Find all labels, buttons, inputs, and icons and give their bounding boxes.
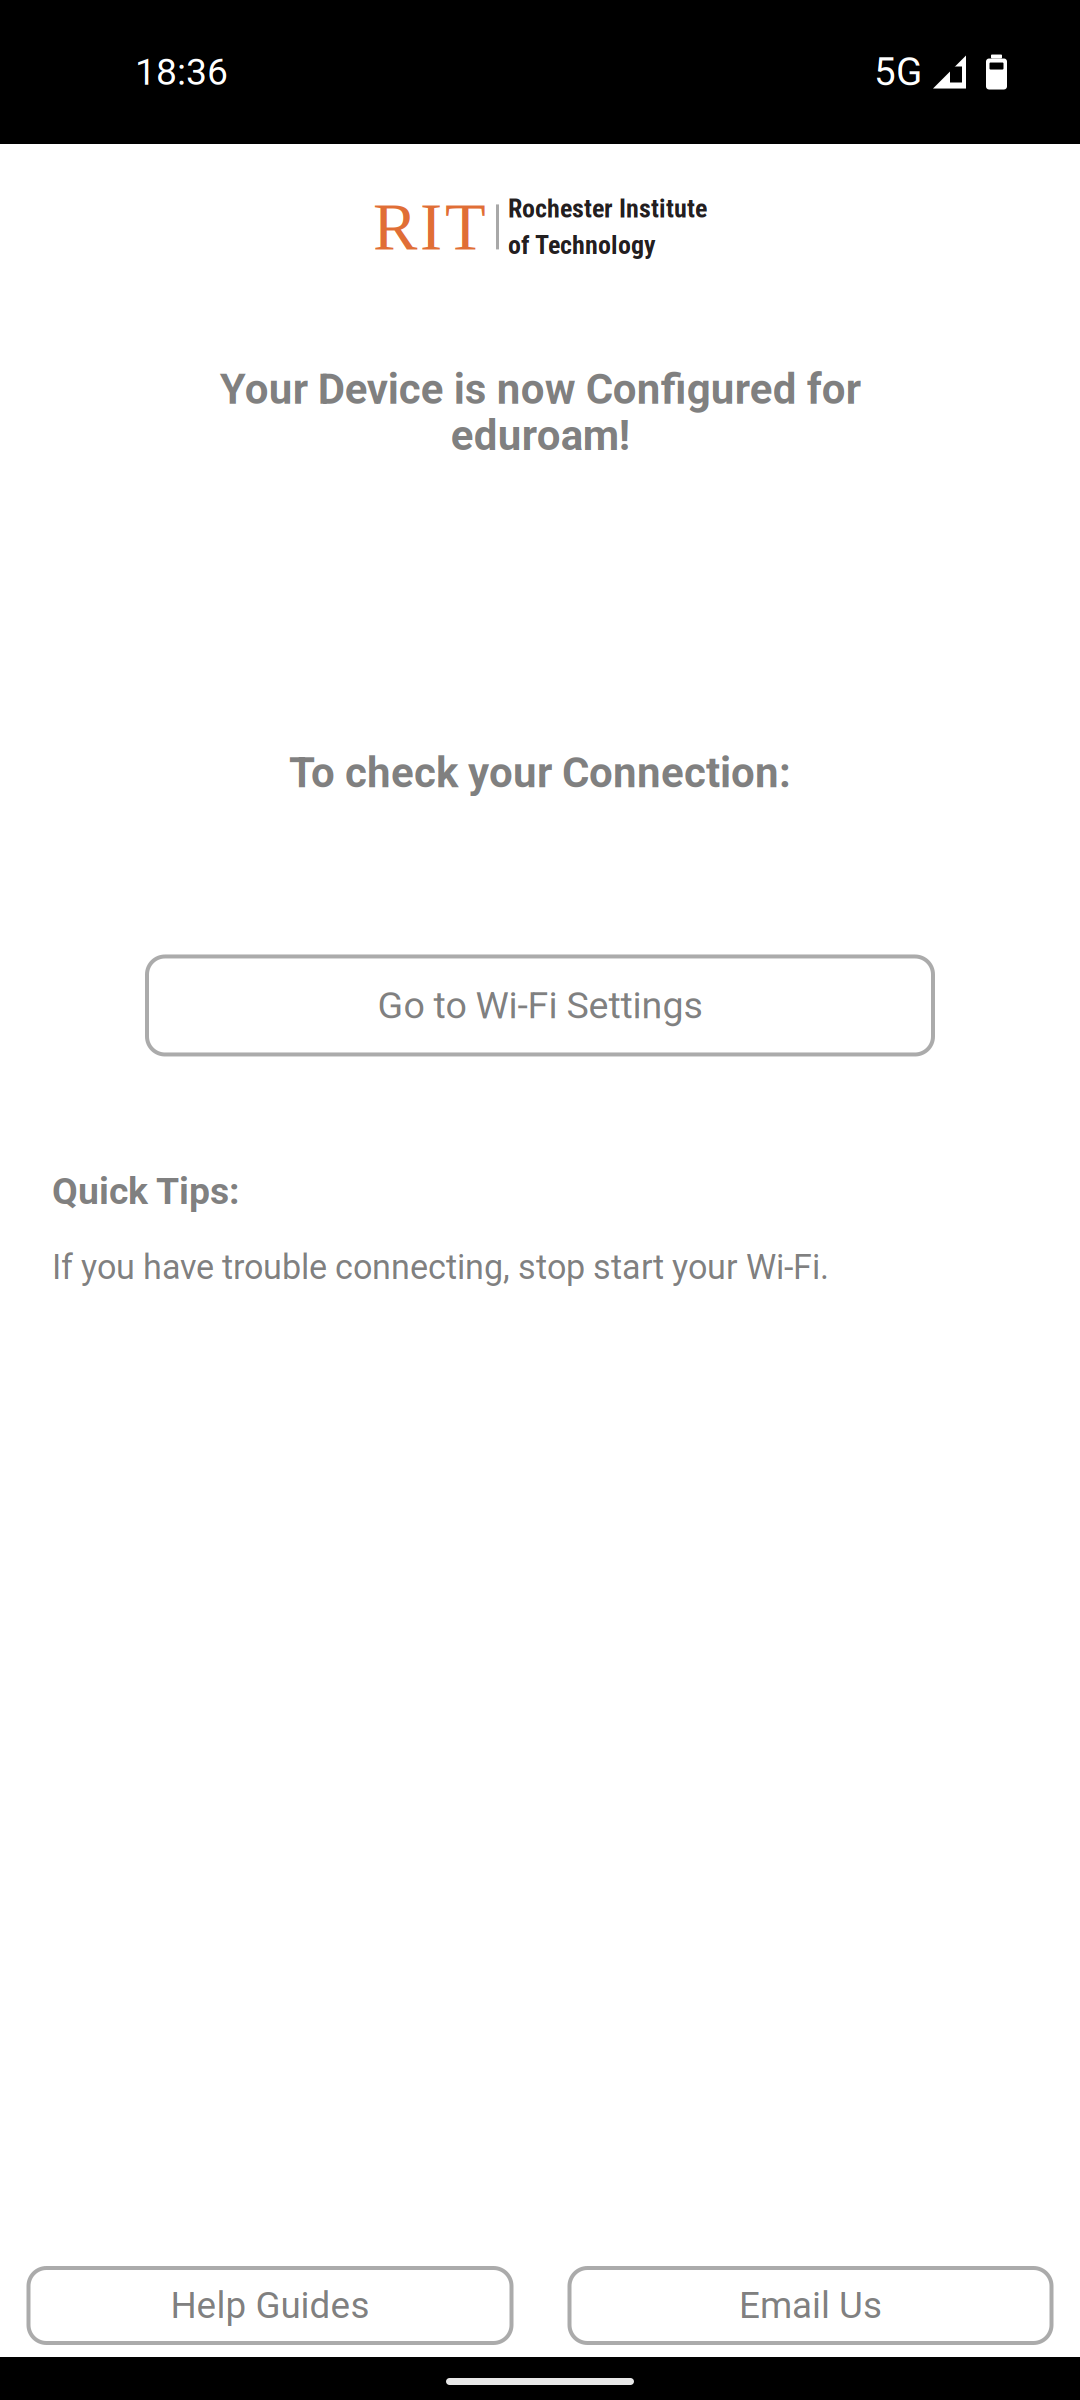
staticText: If you have trouble connecting, stop sta… bbox=[52, 1247, 829, 1287]
staticText: To check your Connection: bbox=[289, 748, 791, 797]
staticText: 18:36 bbox=[135, 50, 228, 94]
button[interactable]: Go to Wi-Fi Settings bbox=[147, 956, 933, 1054]
staticText: Rochester Institute bbox=[508, 193, 707, 224]
staticText: Go to Wi-Fi Settings bbox=[377, 983, 702, 1028]
staticText: RIT bbox=[373, 190, 486, 264]
staticText: of Technology bbox=[508, 230, 656, 260]
staticText: Quick Tips: bbox=[52, 1169, 240, 1213]
button[interactable]: Email Us bbox=[569, 2268, 1051, 2343]
staticText: Help Guides bbox=[170, 2284, 369, 2327]
staticText: 5G bbox=[874, 49, 922, 95]
button[interactable]: Help Guides bbox=[28, 2268, 511, 2343]
staticText: Your Device is now Configured for eduroa… bbox=[219, 365, 860, 460]
staticText: Email Us bbox=[739, 2284, 882, 2327]
